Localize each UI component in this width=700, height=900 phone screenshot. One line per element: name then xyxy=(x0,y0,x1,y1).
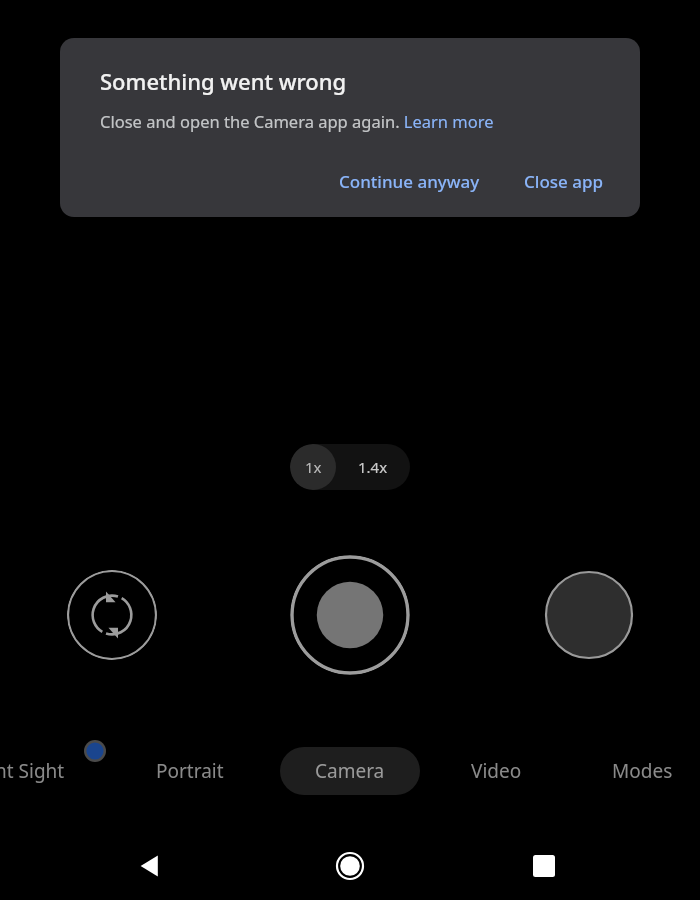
button[interactable]: Take photo xyxy=(290,555,410,675)
staticText: 1x xyxy=(305,457,322,477)
button[interactable]: Gallery xyxy=(544,570,634,660)
button[interactable]: Home xyxy=(322,838,378,894)
button[interactable]: Continue anyway xyxy=(329,164,490,199)
button[interactable]: Night Sight xyxy=(0,748,65,794)
staticText: Close app xyxy=(524,170,604,193)
button[interactable]: Modes xyxy=(600,748,685,794)
staticText: Close and open the Camera app again. Lea… xyxy=(100,110,580,132)
button[interactable]: Video xyxy=(455,748,538,794)
button[interactable]: Back xyxy=(122,838,178,894)
button[interactable]: Portrait xyxy=(140,748,240,794)
staticText: Camera xyxy=(315,758,385,784)
staticText: Modes xyxy=(612,758,673,784)
staticText: Night Sight xyxy=(0,758,65,784)
button[interactable]: Camera xyxy=(280,747,420,795)
button[interactable]: Close app xyxy=(514,164,614,199)
button[interactable]: Switch camera xyxy=(67,570,157,660)
button[interactable]: 1.4x xyxy=(336,444,410,490)
button[interactable]: 1x xyxy=(290,444,336,490)
staticText: Portrait xyxy=(156,758,224,784)
staticText: Video xyxy=(471,758,522,784)
staticText: Continue anyway xyxy=(339,170,480,193)
staticText: Something went wrong xyxy=(100,66,347,96)
staticText: 1.4x xyxy=(358,457,388,477)
button[interactable]: Recents xyxy=(516,838,572,894)
